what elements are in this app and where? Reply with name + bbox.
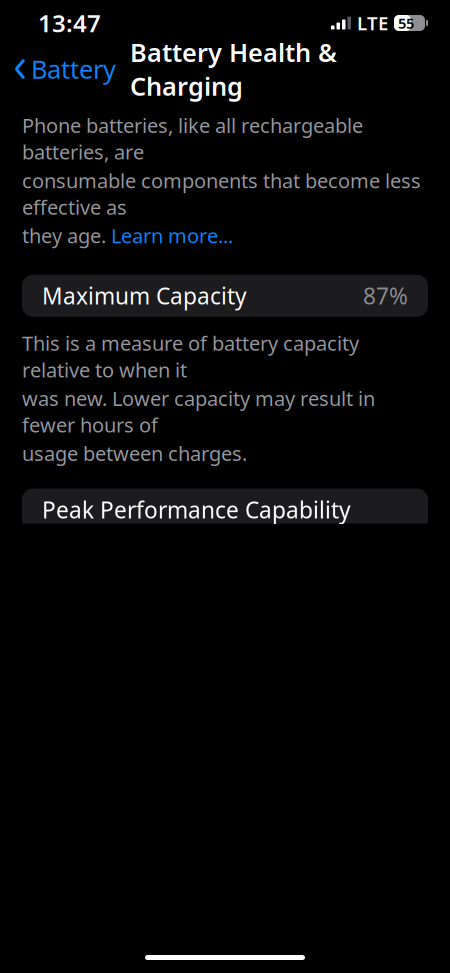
staticText: 55 xyxy=(398,13,414,33)
staticText: Learn more... xyxy=(111,222,233,249)
staticText: usage between charges. xyxy=(22,440,247,467)
staticText: they age. xyxy=(22,222,111,249)
staticText: Phone batteries, like all rechargeable b… xyxy=(22,112,363,165)
staticText: This is a measure of battery capacity re… xyxy=(22,330,359,383)
staticText: consumable components that become less e… xyxy=(22,167,421,220)
staticText: Battery xyxy=(31,52,116,86)
button[interactable]: Battery xyxy=(0,46,116,92)
staticText: Peak Performance Capability xyxy=(42,494,351,525)
button[interactable]: Maximum Capacity xyxy=(22,275,428,317)
staticText: 87% xyxy=(363,281,408,311)
staticText: was new. Lower capacity may result in fe… xyxy=(22,385,375,438)
staticText: LTE xyxy=(357,11,388,35)
button[interactable]: Learn more... xyxy=(111,222,233,249)
staticText: Maximum Capacity xyxy=(42,281,247,311)
staticText: 13:47 xyxy=(38,7,101,39)
staticText: Battery Health & Charging xyxy=(130,35,337,103)
button[interactable]: Peak Performance Capability xyxy=(22,489,428,531)
